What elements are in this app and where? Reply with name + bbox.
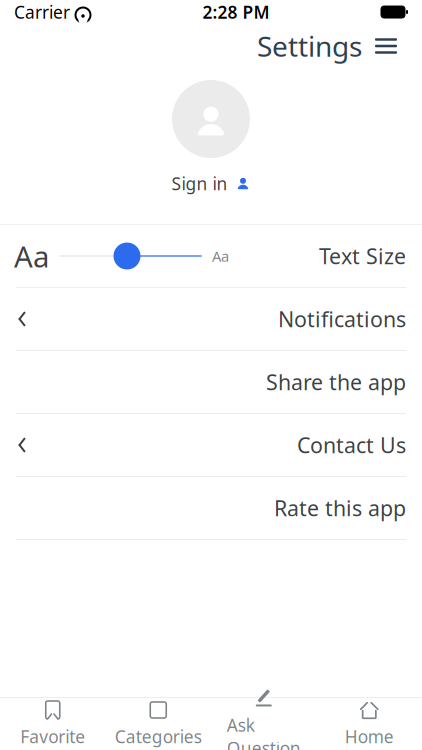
- staticText: Sign in: [171, 172, 227, 195]
- button[interactable]: Rate this app: [0, 477, 422, 539]
- staticText: Contact Us: [297, 431, 406, 459]
- button[interactable]: Contact Us: [0, 414, 422, 476]
- staticText: Aa: [14, 236, 49, 275]
- button[interactable]: Share the app: [0, 351, 422, 413]
- staticText: Favorite: [20, 725, 85, 748]
- staticText: Rate this app: [274, 494, 406, 522]
- button[interactable]: Menu: [362, 24, 410, 68]
- button[interactable]: Notifications: [0, 288, 422, 350]
- button[interactable]: Sign in: [161, 166, 260, 201]
- button[interactable]: Ask Question: [211, 698, 316, 750]
- staticText: Share the app: [266, 368, 406, 396]
- staticText: Ask Question: [227, 713, 301, 750]
- button[interactable]: Favorite: [0, 698, 105, 750]
- button[interactable]: Categories: [105, 698, 211, 750]
- staticText: Home: [345, 725, 394, 748]
- staticText: Text Size: [319, 242, 406, 270]
- staticText: Aa: [212, 246, 229, 266]
- staticText: Carrier: [14, 0, 70, 23]
- button[interactable]: Home: [316, 698, 422, 750]
- staticText: Notifications: [278, 305, 406, 333]
- staticText: Categories: [115, 725, 202, 748]
- staticText: Settings: [257, 27, 362, 65]
- staticText: 2:28 PM: [202, 0, 269, 23]
